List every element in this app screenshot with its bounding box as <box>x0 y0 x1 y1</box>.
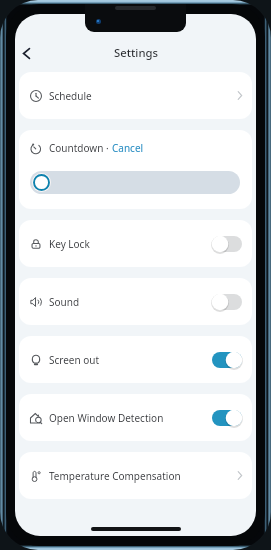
button[interactable]: Open Window Detection <box>212 410 242 426</box>
staticText: Key Lock <box>49 237 90 251</box>
button[interactable]: Key Lock <box>19 220 252 267</box>
button[interactable]: Key Lock <box>212 236 242 252</box>
button[interactable]: Schedule <box>19 72 252 119</box>
staticText: Settings <box>114 45 158 60</box>
staticText: Temperature Compensation <box>49 469 181 483</box>
button[interactable]: Screen out <box>212 352 242 368</box>
staticText: Schedule <box>49 89 92 103</box>
staticText: Cancel <box>112 141 144 155</box>
button[interactable]: Open Window Detection <box>19 394 252 441</box>
button[interactable]: Cancel <box>112 141 144 155</box>
button[interactable]: Sound <box>212 294 242 310</box>
button[interactable]: Sound <box>19 278 252 325</box>
staticText: Screen out <box>49 353 100 367</box>
button[interactable]: Screen out <box>19 336 252 383</box>
staticText: Open Window Detection <box>49 411 164 425</box>
button[interactable]: Countdown progress <box>30 171 240 194</box>
staticText: Countdown · <box>49 141 109 155</box>
button[interactable]: Temperature Compensation <box>19 452 252 499</box>
staticText: Sound <box>49 295 80 309</box>
button[interactable]: Back <box>15 42 37 64</box>
